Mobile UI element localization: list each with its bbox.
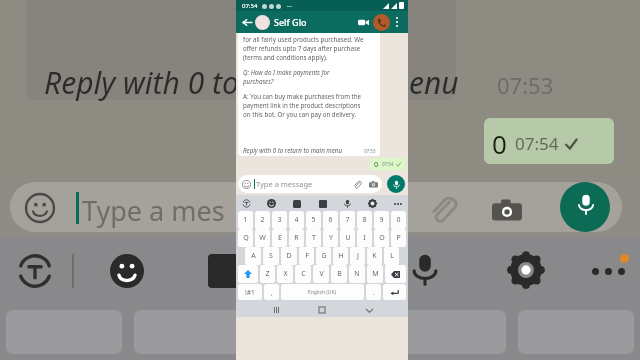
button[interactable]: !#1 [238,284,262,300]
button[interactable]: O [374,229,389,247]
button[interactable]: Translate [240,197,253,210]
button[interactable]: Type a message [238,175,382,193]
button[interactable]: H [333,247,348,265]
staticText: U [345,233,351,243]
button[interactable]: Y [323,229,338,247]
button[interactable]: 7 [340,211,355,229]
staticText: 3 [277,215,282,225]
button[interactable]: L [384,247,399,265]
button[interactable]: 6 [323,211,338,229]
button[interactable]: W [255,229,270,247]
staticText: 07:54 [515,132,559,155]
staticText: N [354,269,360,279]
button[interactable]: Q [238,229,253,247]
button[interactable]: G [316,247,331,265]
staticText: G [321,251,327,261]
button[interactable]: I [357,229,372,247]
button[interactable]: , [264,284,279,300]
staticText: F [305,251,309,261]
button[interactable]: T [306,229,321,247]
button[interactable]: 4 [289,211,304,229]
button[interactable]: 3 [272,211,287,229]
staticText: Type a message [256,179,313,189]
staticText: 7 [345,215,350,225]
button[interactable]: B [331,265,347,283]
button[interactable]: Video call [355,14,371,30]
button[interactable]: Voice input [341,197,354,210]
button[interactable]: 8 [357,211,372,229]
button[interactable]: A [245,247,261,265]
button[interactable]: F [299,247,314,265]
button[interactable]: Z [260,265,275,283]
staticText: B [337,269,342,279]
staticText: Q [243,233,249,243]
staticText: J [357,251,359,261]
staticText: 0 [492,126,507,161]
button[interactable]: Back [240,15,254,29]
button[interactable]: Hide keyboard [362,303,376,317]
button[interactable]: . [366,284,381,300]
button[interactable]: X [277,265,293,283]
button[interactable]: Recents [269,303,283,317]
button[interactable]: Voice message [387,175,405,193]
staticText: A: You can buy make purchases from the p… [243,92,362,119]
staticText: Q: How do I make payments for purchases? [243,68,330,86]
staticText: Z [265,269,270,279]
staticText: D [286,251,292,261]
button[interactable]: 0 [391,211,406,229]
button[interactable]: K [367,247,382,265]
button[interactable]: Emoji [265,197,278,210]
button[interactable]: 5 [306,211,321,229]
button[interactable]: Home [315,303,329,317]
button[interactable]: D [281,247,297,265]
staticText: O [379,233,385,243]
button[interactable]: More [391,197,404,210]
button[interactable]: M [367,265,383,283]
staticText: 0 [396,215,401,225]
staticText: 8 [362,215,367,225]
staticText: E [278,233,282,243]
staticText: C [301,269,306,279]
button[interactable]: J [350,247,365,265]
button[interactable]: C [295,265,311,283]
staticText: Reply with 0 to return to main menu [243,146,343,154]
button[interactable]: Backspace [385,265,406,283]
button[interactable]: R [289,229,304,247]
button[interactable]: Keyboard settings [366,197,379,210]
button[interactable]: English (UK) [281,284,364,300]
button[interactable]: 1 [238,211,253,229]
button[interactable]: 2 [255,211,270,229]
staticText: 07:53 [364,148,376,154]
button[interactable]: 9 [374,211,389,229]
staticText: 6 [328,215,333,225]
button[interactable]: V [313,265,329,283]
staticText: R [294,233,299,243]
button[interactable]: Shift [238,265,258,283]
staticText: P [396,233,401,243]
button[interactable]: Voice call [373,14,390,31]
button[interactable]: P [391,229,406,247]
staticText: H [338,251,344,261]
button[interactable]: Enter [383,284,406,300]
staticText: English (UK) [308,289,337,296]
button[interactable]: N [349,265,365,283]
button[interactable]: U [340,229,355,247]
button[interactable]: S [263,247,279,265]
staticText: W [259,233,266,243]
staticText: 07:53 [497,70,554,100]
staticText: . [373,288,375,297]
staticText: ··· [287,2,292,10]
button[interactable]: Clipboard [316,197,329,210]
staticText: V [319,269,324,279]
button[interactable]: Stickers [290,197,303,210]
staticText: L [390,251,394,261]
button[interactable]: Self Glo [274,16,355,28]
staticText: I [363,233,366,243]
button[interactable]: E [272,229,287,247]
button[interactable]: More options [390,15,404,29]
staticText: 4 [294,215,299,225]
button[interactable]: 0 [370,158,405,170]
staticText: 1 [243,215,248,225]
staticText: M [372,269,379,279]
staticText: !#1 [245,288,255,297]
